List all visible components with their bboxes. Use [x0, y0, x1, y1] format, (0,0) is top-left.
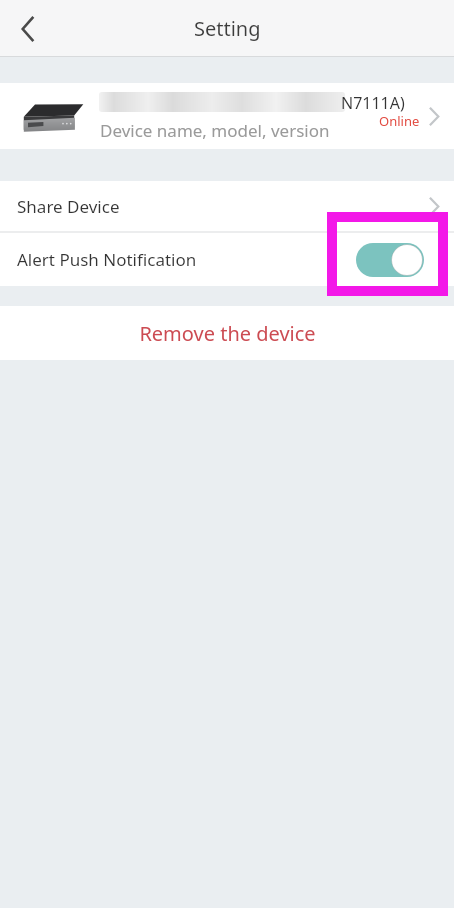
- button[interactable]: Back: [0, 0, 56, 57]
- button[interactable]: Remove the device: [0, 306, 454, 360]
- button[interactable]: N7111A): [0, 83, 454, 149]
- staticText: Setting: [194, 15, 261, 42]
- staticText: Alert Push Notification: [17, 248, 197, 271]
- staticText: Device name, model, version: [100, 119, 330, 142]
- staticText: Remove the device: [139, 320, 316, 347]
- button[interactable]: Alert Push Notification toggle: [356, 243, 424, 277]
- staticText: N7111A): [341, 92, 405, 114]
- staticText: Share Device: [17, 195, 120, 218]
- button[interactable]: Share Device: [0, 181, 454, 231]
- staticText: Online: [379, 112, 420, 130]
